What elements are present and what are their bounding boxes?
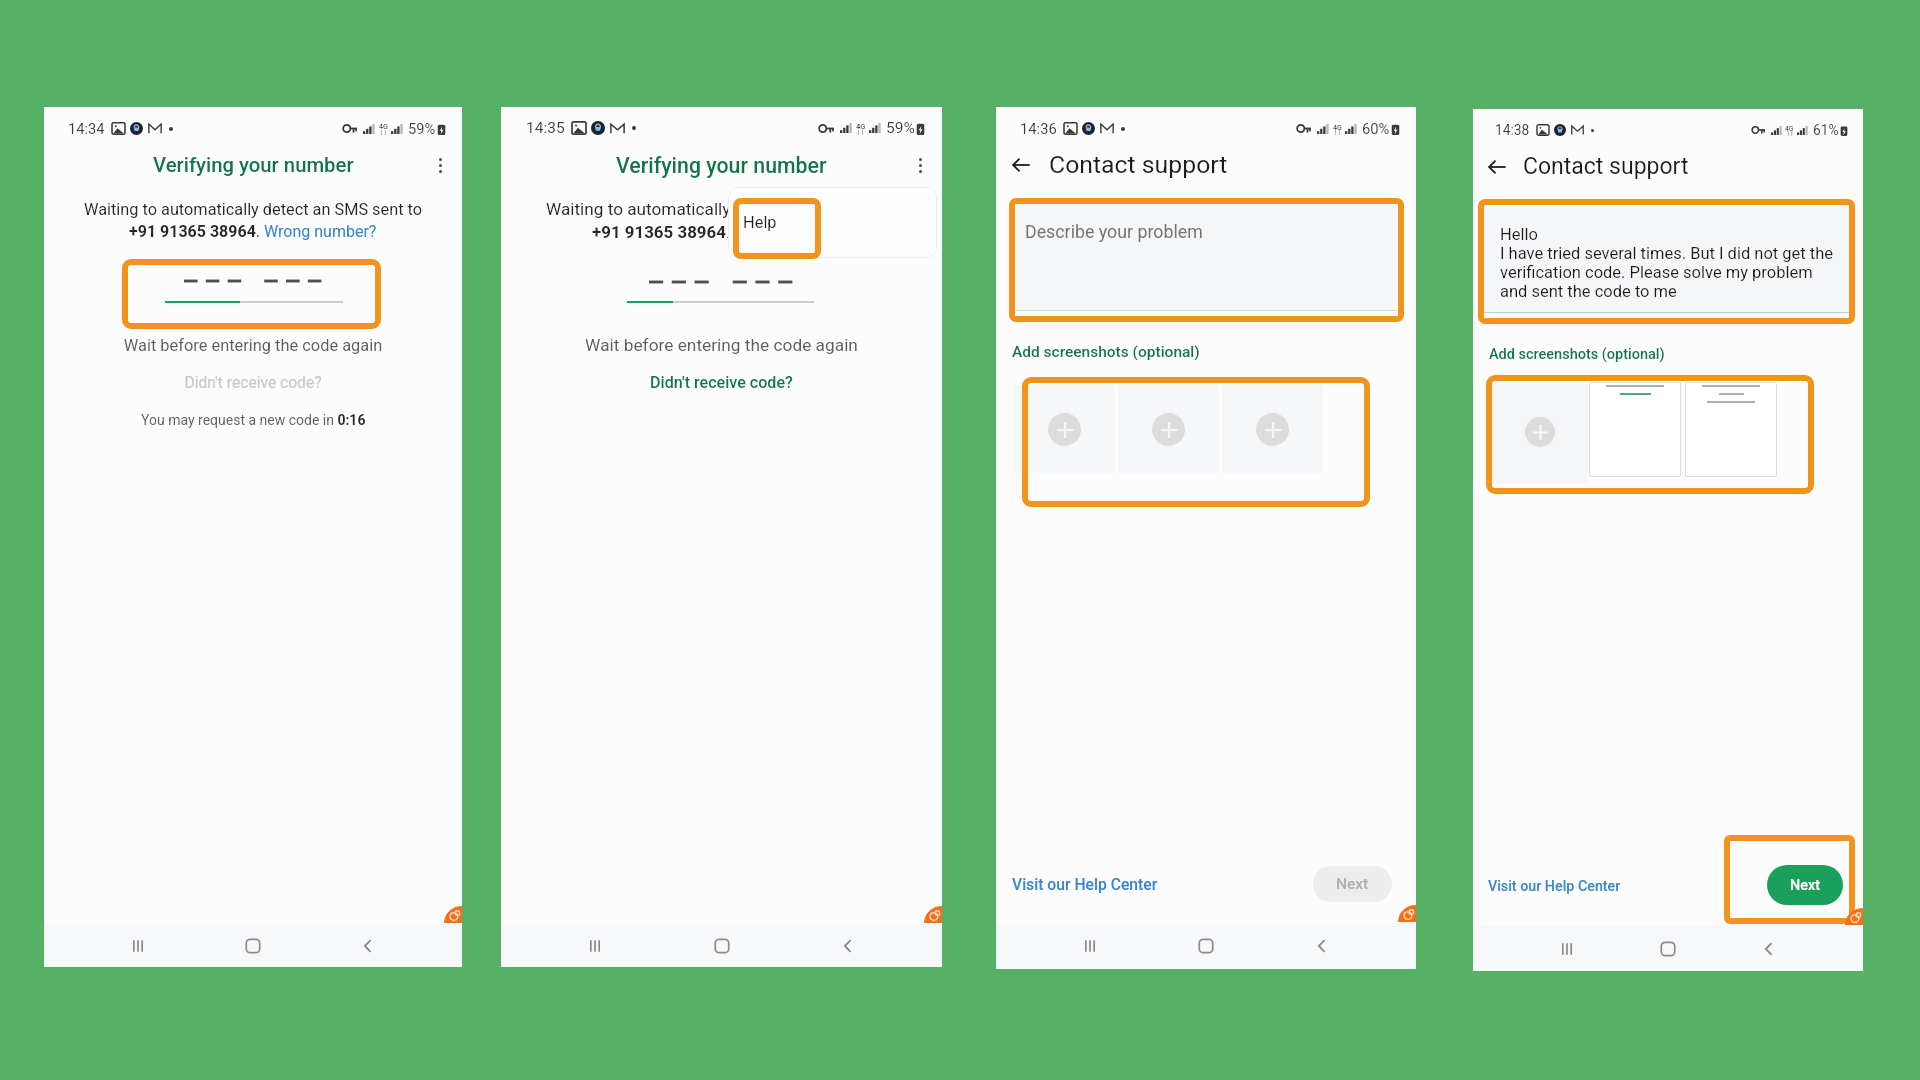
staticText: Verifying your number	[153, 153, 354, 177]
staticText: Didn't receive code?	[44, 374, 462, 392]
staticText: Verifying your number	[616, 153, 827, 178]
button[interactable]: Visit our Help Center	[1012, 875, 1158, 893]
button[interactable]: Home	[1647, 928, 1689, 970]
staticText: Wait before entering the code again	[44, 336, 462, 355]
button[interactable]: Back	[1748, 928, 1790, 970]
button[interactable]: Add screenshot	[1014, 385, 1115, 473]
button[interactable]: Next	[1313, 866, 1392, 902]
staticText: 59%	[408, 120, 436, 137]
button[interactable]: Add screenshot	[1492, 380, 1588, 484]
button[interactable]: Home	[1185, 925, 1227, 967]
staticText: Next	[1790, 877, 1820, 894]
staticText: Waiting to automatically detect an SMS s…	[44, 200, 462, 219]
button[interactable]: Add screenshot	[1222, 385, 1323, 473]
staticText: 4G	[379, 123, 388, 131]
staticText: 14:35	[526, 119, 565, 137]
button[interactable]: Recent apps	[117, 925, 159, 967]
staticText: +91 91365 38964. Wrong number?	[592, 222, 854, 242]
button[interactable]: Recent apps	[574, 925, 616, 967]
button[interactable]: Back	[1301, 925, 1343, 967]
staticText: Describe your problem	[1025, 221, 1203, 242]
button[interactable]: Next	[1767, 865, 1843, 905]
staticText: Help	[743, 213, 777, 232]
button[interactable]: Recent apps	[1069, 925, 1111, 967]
staticText: Add screenshots (optional)	[1012, 343, 1200, 361]
button[interactable]: Recent apps	[1546, 928, 1588, 970]
staticText: Waiting to automatically detect an SMS s…	[546, 199, 903, 219]
button[interactable]: Screenshot preview	[1685, 382, 1777, 477]
staticText: 14:38	[1495, 122, 1530, 138]
button[interactable]: Back	[1003, 147, 1039, 183]
staticText: 4G	[856, 122, 866, 131]
staticText: 4G	[1785, 125, 1794, 133]
button[interactable]: More options	[904, 149, 936, 181]
staticText: 61%	[1813, 122, 1839, 138]
button[interactable]: Back	[1479, 149, 1515, 185]
staticText: Contact support	[1523, 153, 1689, 180]
button[interactable]: Home	[232, 925, 274, 967]
staticText: 60%	[1362, 120, 1390, 137]
staticText: You may request a new code in 0:16	[141, 412, 366, 428]
staticText: 4G	[1333, 123, 1342, 131]
staticText: 59%	[886, 119, 915, 137]
staticText: 14:34	[68, 120, 105, 137]
button[interactable]: Add screenshot	[1118, 385, 1219, 473]
staticText: Wait before entering the code again	[501, 335, 942, 355]
button[interactable]: Visit our Help Center	[1488, 878, 1621, 895]
button[interactable]: Home	[701, 925, 743, 967]
staticText: Didn't receive code?	[501, 373, 942, 392]
staticText: Add screenshots (optional)	[1489, 346, 1665, 363]
staticText: +91 91365 38964. Wrong number?	[129, 222, 377, 241]
staticText: 14:36	[1020, 120, 1057, 137]
button[interactable]: Help	[733, 198, 821, 259]
staticText: Hello I have tried several times. But I …	[1500, 225, 1834, 301]
button[interactable]: Back	[347, 925, 389, 967]
staticText: Next	[1336, 875, 1369, 893]
staticText: Contact support	[1049, 150, 1228, 179]
button[interactable]: More options	[424, 149, 456, 181]
button[interactable]: Back	[827, 925, 869, 967]
button[interactable]: Screenshot preview	[1589, 382, 1681, 477]
